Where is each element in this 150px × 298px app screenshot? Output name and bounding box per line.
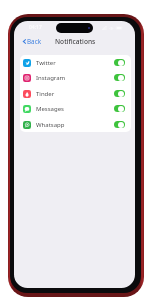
button[interactable]: Instagram: [20, 70, 131, 85]
button[interactable]: Toggle Twitter notifications: [114, 59, 125, 66]
staticText: Instagram: [36, 74, 66, 82]
button[interactable]: Whatsapp: [20, 117, 131, 132]
button[interactable]: Twitter: [20, 55, 131, 70]
button[interactable]: Back: [14, 34, 48, 48]
staticText: Back: [27, 37, 42, 45]
staticText: Notifications: [55, 37, 96, 46]
button[interactable]: Toggle Messages notifications: [114, 105, 125, 112]
button[interactable]: Tinder: [20, 86, 131, 101]
staticText: Twitter: [36, 59, 56, 67]
staticText: Messages: [36, 105, 64, 113]
button[interactable]: Messages: [20, 101, 131, 116]
button[interactable]: Toggle Instagram notifications: [114, 74, 125, 81]
staticText: 04:17: [29, 24, 42, 31]
staticText: Whatsapp: [36, 121, 65, 129]
staticText: Tinder: [36, 90, 55, 98]
button[interactable]: Toggle Whatsapp notifications: [114, 121, 125, 128]
button[interactable]: Toggle Tinder notifications: [114, 90, 125, 97]
